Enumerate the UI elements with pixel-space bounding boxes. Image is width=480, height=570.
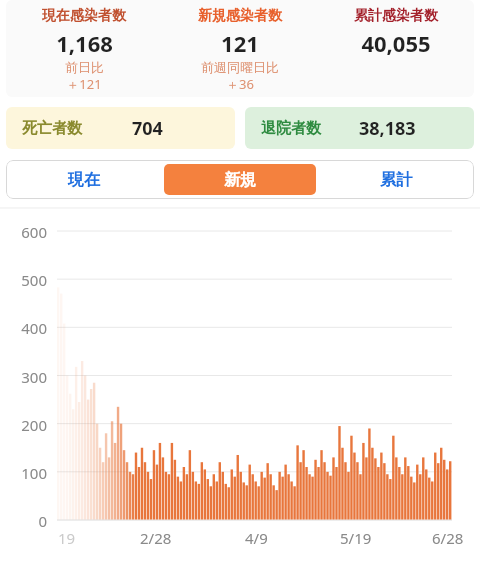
staticText: 1,168 [56,28,113,58]
staticText: 100 [21,463,47,483]
staticText: 新規 [224,170,256,190]
button[interactable]: 退院者数 [245,107,474,149]
staticText: 400 [21,318,47,338]
button[interactable]: 累計 [320,164,472,195]
staticText: ＋121 [66,75,102,93]
button[interactable]: 現在 [8,164,160,195]
staticText: 200 [21,415,47,435]
button[interactable]: 新規感染者数 [162,0,318,93]
staticText: 40,055 [361,28,431,58]
staticText: 累計感染者数 [354,7,438,25]
staticText: 600 [21,222,47,242]
button[interactable]: 新規 [164,164,316,195]
staticText: 500 [21,270,47,290]
staticText: 0 [38,511,47,531]
staticText: 退院者数 [261,119,321,138]
staticText: 19 [58,528,76,547]
staticText: ＋36 [226,75,254,93]
staticText: 121 [221,28,259,58]
staticText: 4/9 [245,528,268,547]
button[interactable]: 現在感染者数 [6,0,162,93]
staticText: 現在 [68,170,100,190]
staticText: 6/28 [432,528,464,547]
staticText: 前週同曜日比 [201,59,279,75]
staticText: 累計 [380,170,412,190]
staticText: 5/19 [340,528,372,547]
staticText: 300 [21,367,47,387]
staticText: 2/28 [140,528,172,547]
staticText: 前日比 [65,59,104,75]
staticText: 現在感染者数 [42,7,126,25]
staticText: 死亡者数 [22,119,82,138]
staticText: 新規感染者数 [198,7,282,25]
staticText: 704 [132,116,163,141]
staticText: 38,183 [359,116,416,141]
button[interactable]: 累計感染者数 [318,0,474,58]
button[interactable]: 死亡者数 [6,107,235,149]
